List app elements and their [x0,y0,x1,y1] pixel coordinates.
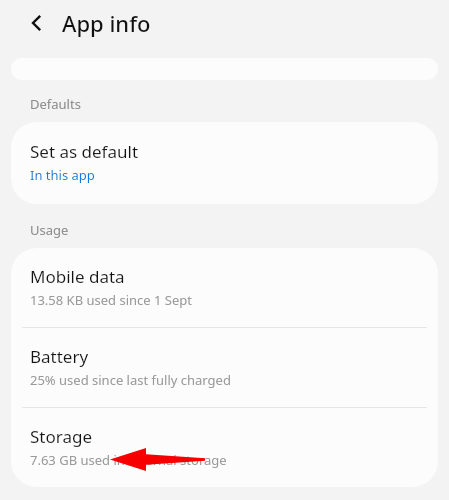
staticText: 25% used since last fully charged [30,371,231,389]
button[interactable]: Set as default [11,122,438,204]
staticText: Set as default [30,140,139,163]
button[interactable]: Battery [11,328,438,407]
button[interactable]: Back [22,8,52,38]
staticText: Mobile data [30,265,125,288]
staticText: Storage [30,425,93,448]
staticText: Usage [30,221,69,239]
staticText: 7.63 GB used in Internal storage [30,451,227,469]
staticText: App info [62,8,151,38]
staticText: In this app [30,166,95,184]
staticText: Battery [30,345,89,368]
button[interactable]: Storage [11,408,438,487]
staticText: Defaults [30,95,81,113]
staticText: 13.58 KB used since 1 Sept [30,291,192,309]
button[interactable]: Mobile data [11,248,438,327]
